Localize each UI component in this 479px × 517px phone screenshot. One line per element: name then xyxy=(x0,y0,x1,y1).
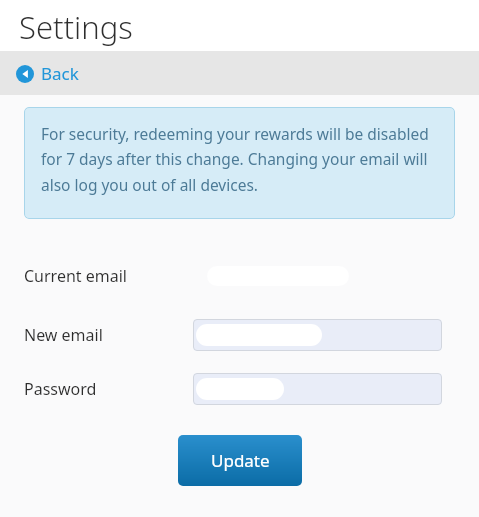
staticText: Update xyxy=(211,449,270,472)
button[interactable]: Back xyxy=(12,56,83,91)
staticText: Current email xyxy=(24,265,127,287)
staticText: Password xyxy=(24,378,97,400)
staticText: New email xyxy=(24,324,103,346)
staticText: Back xyxy=(41,62,79,85)
staticText: For security, redeeming your rewards wil… xyxy=(41,123,438,196)
button[interactable]: Update xyxy=(178,435,302,486)
button[interactable] xyxy=(193,373,442,405)
staticText: Settings xyxy=(19,6,133,48)
button[interactable] xyxy=(193,319,442,351)
other: Back xyxy=(16,65,34,83)
